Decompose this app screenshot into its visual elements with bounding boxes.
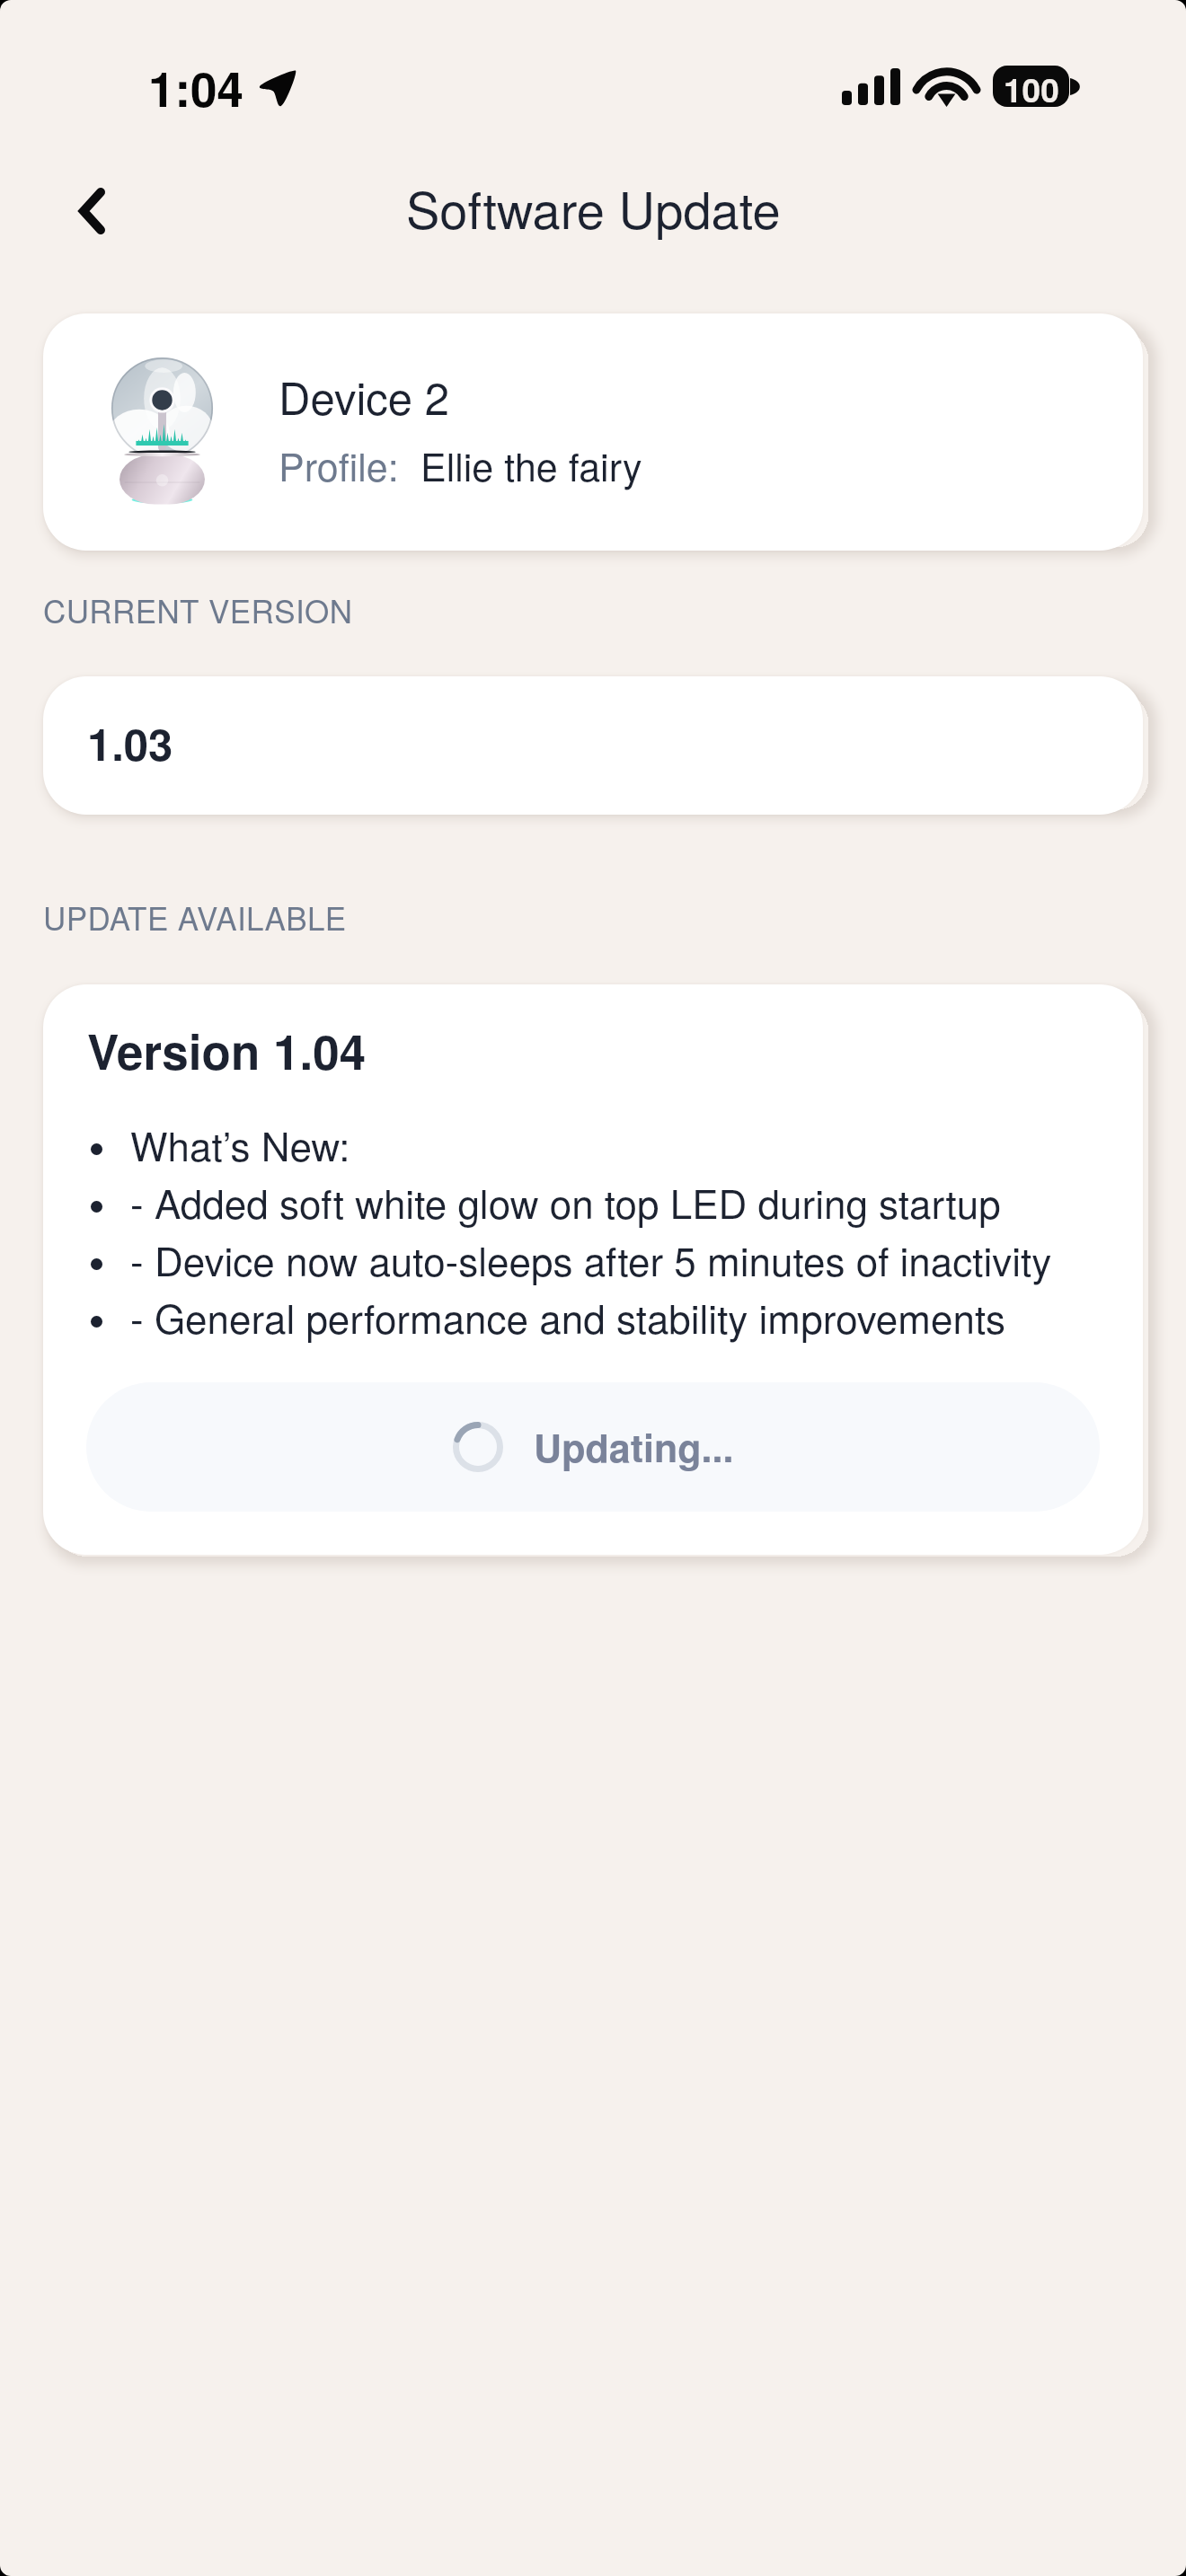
staticText: Profile: <box>279 437 399 493</box>
button[interactable]: Device 2 <box>43 313 1143 551</box>
staticText: - Device now auto-sleeps after 5 minutes… <box>130 1231 1052 1287</box>
staticText: 1:04 <box>148 53 244 121</box>
staticText: Updating... <box>534 1419 734 1475</box>
button[interactable]: 1.03 <box>43 676 1143 815</box>
staticText: - Added soft white glow on top LED durin… <box>130 1173 1001 1230</box>
staticText: - General performance and stability impr… <box>130 1288 1006 1345</box>
staticText: 1.03 <box>87 711 173 774</box>
staticText: CURRENT VERSION <box>43 587 353 632</box>
staticText: Version 1.04 <box>87 1016 367 1084</box>
staticText: What’s New: <box>130 1116 350 1172</box>
staticText: 100 <box>1004 66 1059 106</box>
staticText: UPDATE AVAILABLE <box>43 895 347 940</box>
button[interactable]: Updating... <box>86 1382 1100 1512</box>
staticText: Ellie the fairy <box>420 437 642 493</box>
button[interactable]: Back <box>53 172 130 250</box>
staticText: Device 2 <box>279 365 449 428</box>
staticText: Software Update <box>406 172 781 243</box>
